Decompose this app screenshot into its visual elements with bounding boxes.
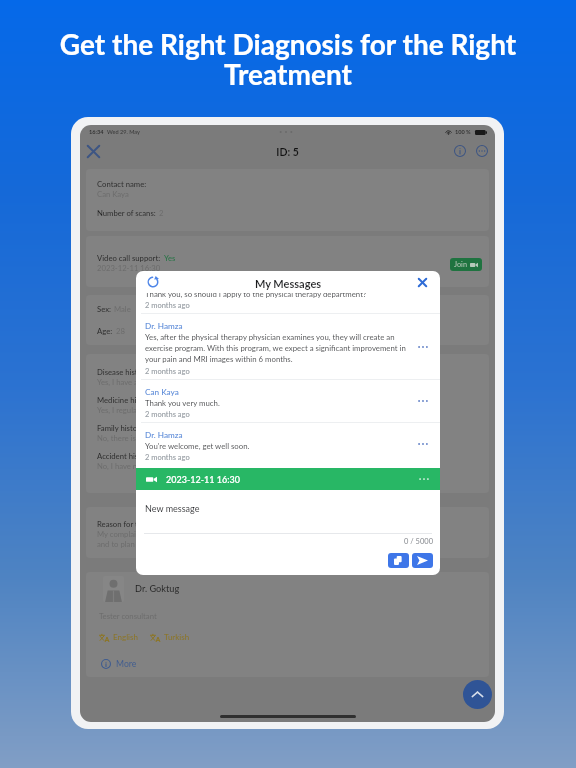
staticText: Yes (164, 253, 176, 262)
staticText: Thank you, so should I apply to the phys… (145, 293, 367, 298)
staticText: Dr. Goktug (135, 583, 180, 594)
staticText: Number of scans: (97, 208, 156, 217)
button[interactable]: Join (450, 258, 482, 271)
button[interactable]: English (99, 632, 138, 642)
button[interactable]: Send (412, 553, 433, 568)
staticText: Dr. Hamza (145, 430, 183, 440)
staticText: My complaints increased in the last 3 mo… (97, 529, 390, 548)
staticText: Turkish (164, 632, 190, 642)
button[interactable]: Call options (417, 472, 431, 486)
staticText: 2 months ago (145, 301, 190, 310)
staticText: Reason for the consultation: (97, 519, 192, 528)
staticText: 2 months ago (145, 453, 190, 461)
button[interactable]: Refresh (147, 276, 159, 288)
staticText: Join (454, 260, 467, 269)
staticText: Medicine history: (97, 395, 156, 404)
button[interactable]: Message options (416, 437, 430, 451)
staticText: Can Kaya (97, 189, 129, 198)
staticText: New message (145, 503, 200, 514)
staticText: Dr. Hamza (145, 321, 183, 331)
staticText: Disease history: (97, 367, 151, 376)
staticText: English (113, 632, 138, 642)
staticText: 28 (116, 326, 125, 335)
button[interactable]: Turkish (150, 632, 190, 642)
staticText: Get the Right Diagnosis for the Right Tr… (26, 27, 550, 91)
button[interactable]: Close dialog (417, 277, 428, 288)
button[interactable]: Information (454, 145, 466, 157)
staticText: Male (114, 304, 131, 313)
staticText: 0 / 5000 (136, 537, 433, 546)
button[interactable]: More options (476, 145, 488, 157)
staticText: Thank you very much. (145, 398, 220, 407)
staticText: 2 months ago (145, 367, 190, 376)
staticText: Wed 29. May (107, 128, 140, 135)
button[interactable]: Message options (416, 340, 430, 354)
staticText: Contact name: (97, 179, 147, 188)
staticText: 16:34 (89, 128, 104, 135)
staticText: 2023-12-11 16:30 (166, 474, 240, 485)
button[interactable]: Close (85, 143, 102, 160)
button[interactable]: More (101, 659, 137, 669)
staticText: My Messages (136, 277, 440, 290)
staticText: 2 (159, 208, 164, 217)
button[interactable]: Attach (388, 553, 409, 568)
staticText: Age: (97, 326, 113, 335)
button[interactable]: Scroll to top (463, 680, 492, 709)
staticText: 2 months ago (145, 410, 190, 419)
staticText: 2023-12-11 16:30 (97, 263, 161, 272)
staticText: Family history: (97, 423, 146, 432)
staticText: Yes, I regularly use painkillers when ne… (97, 405, 244, 414)
staticText: 100 % (455, 128, 471, 135)
staticText: Tester consultant (99, 611, 157, 620)
staticText: More (116, 659, 137, 669)
staticText: Video call support: (97, 253, 161, 262)
staticText: Sex: (97, 304, 111, 313)
button[interactable]: 2023-12-11 16:30 (136, 468, 440, 490)
staticText: No, there is no known family disease his… (97, 433, 247, 442)
staticText: No, I have not had any serious accident. (97, 461, 231, 470)
button[interactable]: Message options (416, 394, 430, 408)
staticText: ID: 5 (80, 146, 495, 159)
staticText: Accident history: (97, 451, 155, 460)
staticText: Can Kaya (145, 387, 179, 397)
staticText: Yes, I have a history of lumbar disc her… (97, 377, 251, 386)
staticText: Yes, after the physical therapy physicia… (145, 332, 406, 364)
staticText: You're welcome, get well soon. (145, 441, 250, 450)
